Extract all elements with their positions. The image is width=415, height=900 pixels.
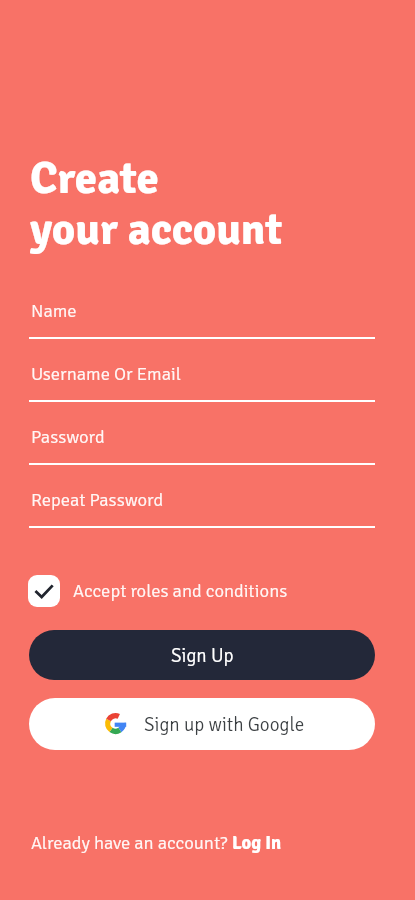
- staticText: Repeat Password: [31, 489, 164, 512]
- button[interactable]: Password: [29, 421, 375, 465]
- button[interactable]: Already have an account?: [31, 832, 282, 855]
- staticText: Username Or Email: [31, 363, 182, 386]
- staticText: Sign up with Google: [144, 713, 305, 736]
- staticText: Sign Up: [171, 644, 234, 667]
- button[interactable]: Name: [29, 295, 375, 339]
- staticText: Log In: [232, 832, 282, 855]
- staticText: Already have an account?: [31, 832, 232, 855]
- button[interactable]: Repeat Password: [29, 484, 375, 528]
- staticText: Create your account: [30, 151, 283, 257]
- button[interactable]: Accept roles and conditions: [28, 575, 288, 607]
- staticText: Accept roles and conditions: [73, 580, 288, 603]
- button[interactable]: Sign Up: [29, 630, 375, 680]
- button[interactable]: Sign up with Google: [29, 698, 375, 750]
- button[interactable]: Username Or Email: [29, 358, 375, 402]
- staticText: Password: [31, 426, 105, 449]
- staticText: Name: [31, 300, 77, 323]
